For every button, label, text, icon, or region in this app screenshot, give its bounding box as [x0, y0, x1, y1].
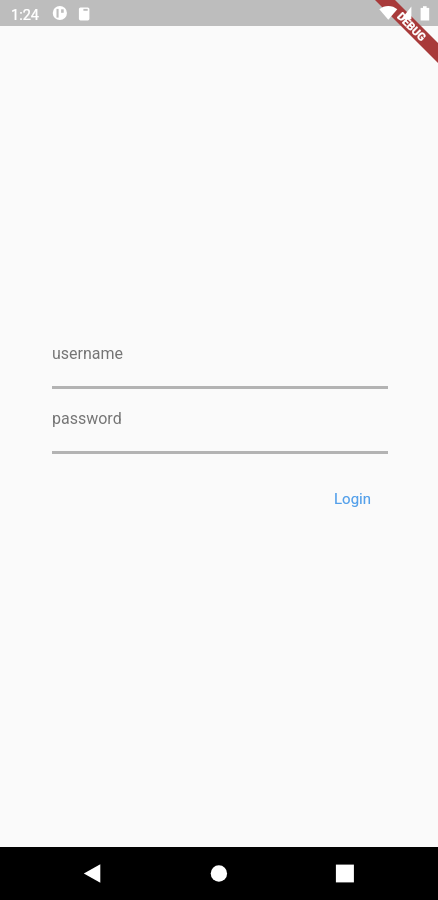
staticText: 1:24 [11, 7, 39, 24]
button[interactable]: Back [62, 847, 122, 900]
staticText: Login [334, 490, 371, 508]
staticText: DEBUG [394, 10, 429, 45]
button[interactable]: Home [189, 847, 249, 900]
staticText: password [52, 409, 122, 428]
button[interactable]: Recent apps [315, 847, 375, 900]
button[interactable]: Login [326, 482, 379, 516]
staticText: username [52, 344, 124, 363]
